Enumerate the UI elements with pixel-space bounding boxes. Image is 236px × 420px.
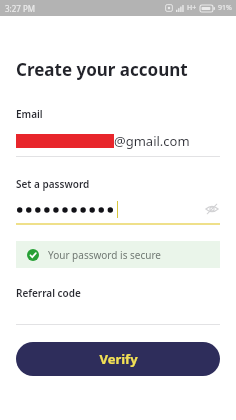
staticText: Referral code	[16, 286, 81, 300]
staticText: 91%	[218, 3, 232, 13]
staticText: Verify	[99, 350, 138, 368]
button[interactable]: Verify	[16, 342, 220, 376]
staticText: Email	[16, 107, 43, 121]
staticText: H+	[187, 3, 197, 13]
button[interactable]: @gmail.com	[16, 130, 220, 152]
staticText: Set a password	[16, 177, 90, 191]
button[interactable]: Show password	[16, 199, 220, 219]
staticText: Your password is secure	[48, 248, 161, 262]
staticText: 3:27 PM	[5, 3, 36, 14]
button[interactable]: Show password	[204, 201, 220, 217]
staticText: Create your account	[16, 58, 188, 81]
staticText: @gmail.com	[114, 132, 190, 150]
